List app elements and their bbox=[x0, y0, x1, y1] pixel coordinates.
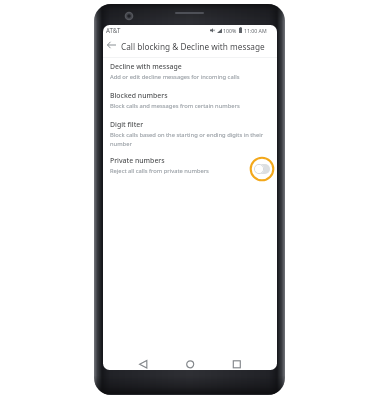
staticText: Decline with message bbox=[110, 62, 182, 71]
staticText: 11:00 AM bbox=[244, 27, 267, 34]
button[interactable]: Blocked numbers bbox=[103, 87, 277, 116]
staticText: Block calls and messages from certain nu… bbox=[110, 102, 240, 110]
button[interactable]: Private numbers switch bbox=[250, 157, 274, 181]
staticText: 100% bbox=[223, 27, 237, 34]
other: System navigation bbox=[103, 350, 277, 370]
button[interactable]: Private numbers bbox=[103, 152, 277, 180]
staticText: Private numbers bbox=[110, 156, 165, 165]
staticText: Blocked numbers bbox=[110, 91, 168, 100]
staticText: Digit filter bbox=[110, 120, 144, 129]
staticText: Add or edit decline messages for incomin… bbox=[110, 73, 240, 81]
staticText: Reject all calls from private numbers bbox=[110, 167, 209, 175]
button[interactable]: Navigate up bbox=[103, 36, 120, 53]
button[interactable]: Digit filter bbox=[103, 116, 277, 152]
button[interactable]: Decline with message bbox=[103, 58, 277, 87]
staticText: Block calls based on the starting or end… bbox=[110, 131, 268, 148]
staticText: Call blocking & Decline with message bbox=[121, 41, 265, 52]
staticText: AT&T bbox=[106, 26, 121, 34]
